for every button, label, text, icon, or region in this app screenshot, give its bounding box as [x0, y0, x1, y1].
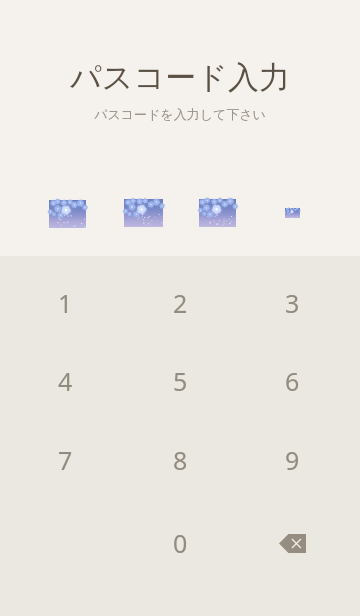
staticText: パスコードを入力して下さい — [94, 106, 266, 122]
staticText: パスコード入力 — [70, 58, 290, 97]
button[interactable]: 3 — [254, 277, 330, 329]
button[interactable]: 8 — [142, 434, 218, 486]
staticText: 5 — [173, 364, 188, 398]
button[interactable]: 0 — [142, 517, 218, 569]
button[interactable]: 6 — [254, 355, 330, 407]
button[interactable]: 2 — [142, 277, 218, 329]
button[interactable]: Backspace — [254, 517, 330, 569]
staticText: 2 — [173, 286, 188, 320]
button[interactable]: 4 — [27, 355, 103, 407]
staticText: 3 — [285, 286, 300, 320]
staticText: 4 — [58, 364, 73, 398]
button[interactable]: 9 — [254, 434, 330, 486]
staticText: 1 — [58, 286, 73, 320]
staticText: 9 — [285, 443, 300, 477]
button[interactable]: 7 — [27, 434, 103, 486]
staticText: 7 — [58, 443, 73, 477]
button[interactable]: 5 — [142, 355, 218, 407]
staticText: 0 — [173, 526, 188, 560]
staticText: 8 — [173, 443, 188, 477]
staticText: 6 — [285, 364, 300, 398]
button[interactable]: 1 — [27, 277, 103, 329]
